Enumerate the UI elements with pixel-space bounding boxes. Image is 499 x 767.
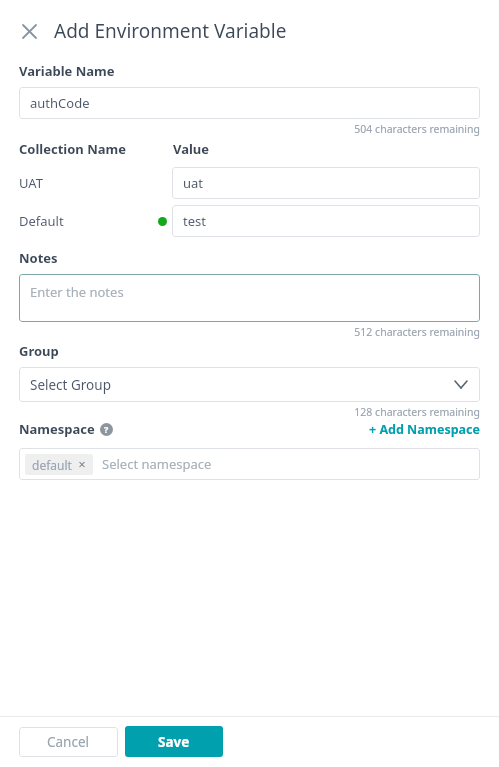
- staticText: uat: [183, 174, 204, 192]
- button[interactable]: Cancel: [19, 727, 118, 757]
- staticText: Collection Name: [19, 140, 126, 158]
- staticText: ?: [104, 423, 109, 435]
- button[interactable]: Close: [16, 18, 42, 44]
- staticText: Variable Name: [19, 62, 115, 80]
- staticText: + Add Namespace: [369, 421, 480, 438]
- staticText: 504 characters remaining: [19, 122, 480, 136]
- button[interactable]: + Add Namespace: [369, 421, 480, 438]
- button[interactable]: default: [19, 448, 480, 480]
- staticText: Cancel: [47, 733, 90, 751]
- button[interactable]: Help about namespace: [99, 422, 113, 436]
- staticText: Enter the notes: [30, 283, 124, 301]
- staticText: Add Environment Variable: [54, 18, 287, 44]
- staticText: Group: [19, 342, 59, 360]
- staticText: Namespace: [19, 420, 95, 438]
- staticText: test: [183, 212, 206, 230]
- button[interactable]: Save: [125, 726, 223, 757]
- staticText: Value: [173, 140, 210, 158]
- staticText: Notes: [19, 249, 58, 267]
- staticText: Save: [158, 733, 190, 751]
- staticText: Select Group: [30, 376, 111, 394]
- staticText: authCode: [30, 94, 90, 112]
- button[interactable]: default: [25, 454, 93, 475]
- staticText: ✕: [78, 459, 86, 470]
- staticText: UAT: [19, 174, 43, 192]
- staticText: Default: [19, 212, 64, 230]
- button[interactable]: test: [172, 205, 480, 237]
- button[interactable]: authCode: [19, 87, 480, 119]
- staticText: default: [32, 457, 72, 473]
- staticText: 512 characters remaining: [19, 325, 480, 339]
- button[interactable]: Select Group: [19, 367, 480, 402]
- button[interactable]: uat: [172, 167, 480, 199]
- staticText: Select namespace: [102, 455, 212, 473]
- staticText: 128 characters remaining: [19, 405, 480, 419]
- button[interactable]: Enter the notes: [19, 274, 480, 322]
